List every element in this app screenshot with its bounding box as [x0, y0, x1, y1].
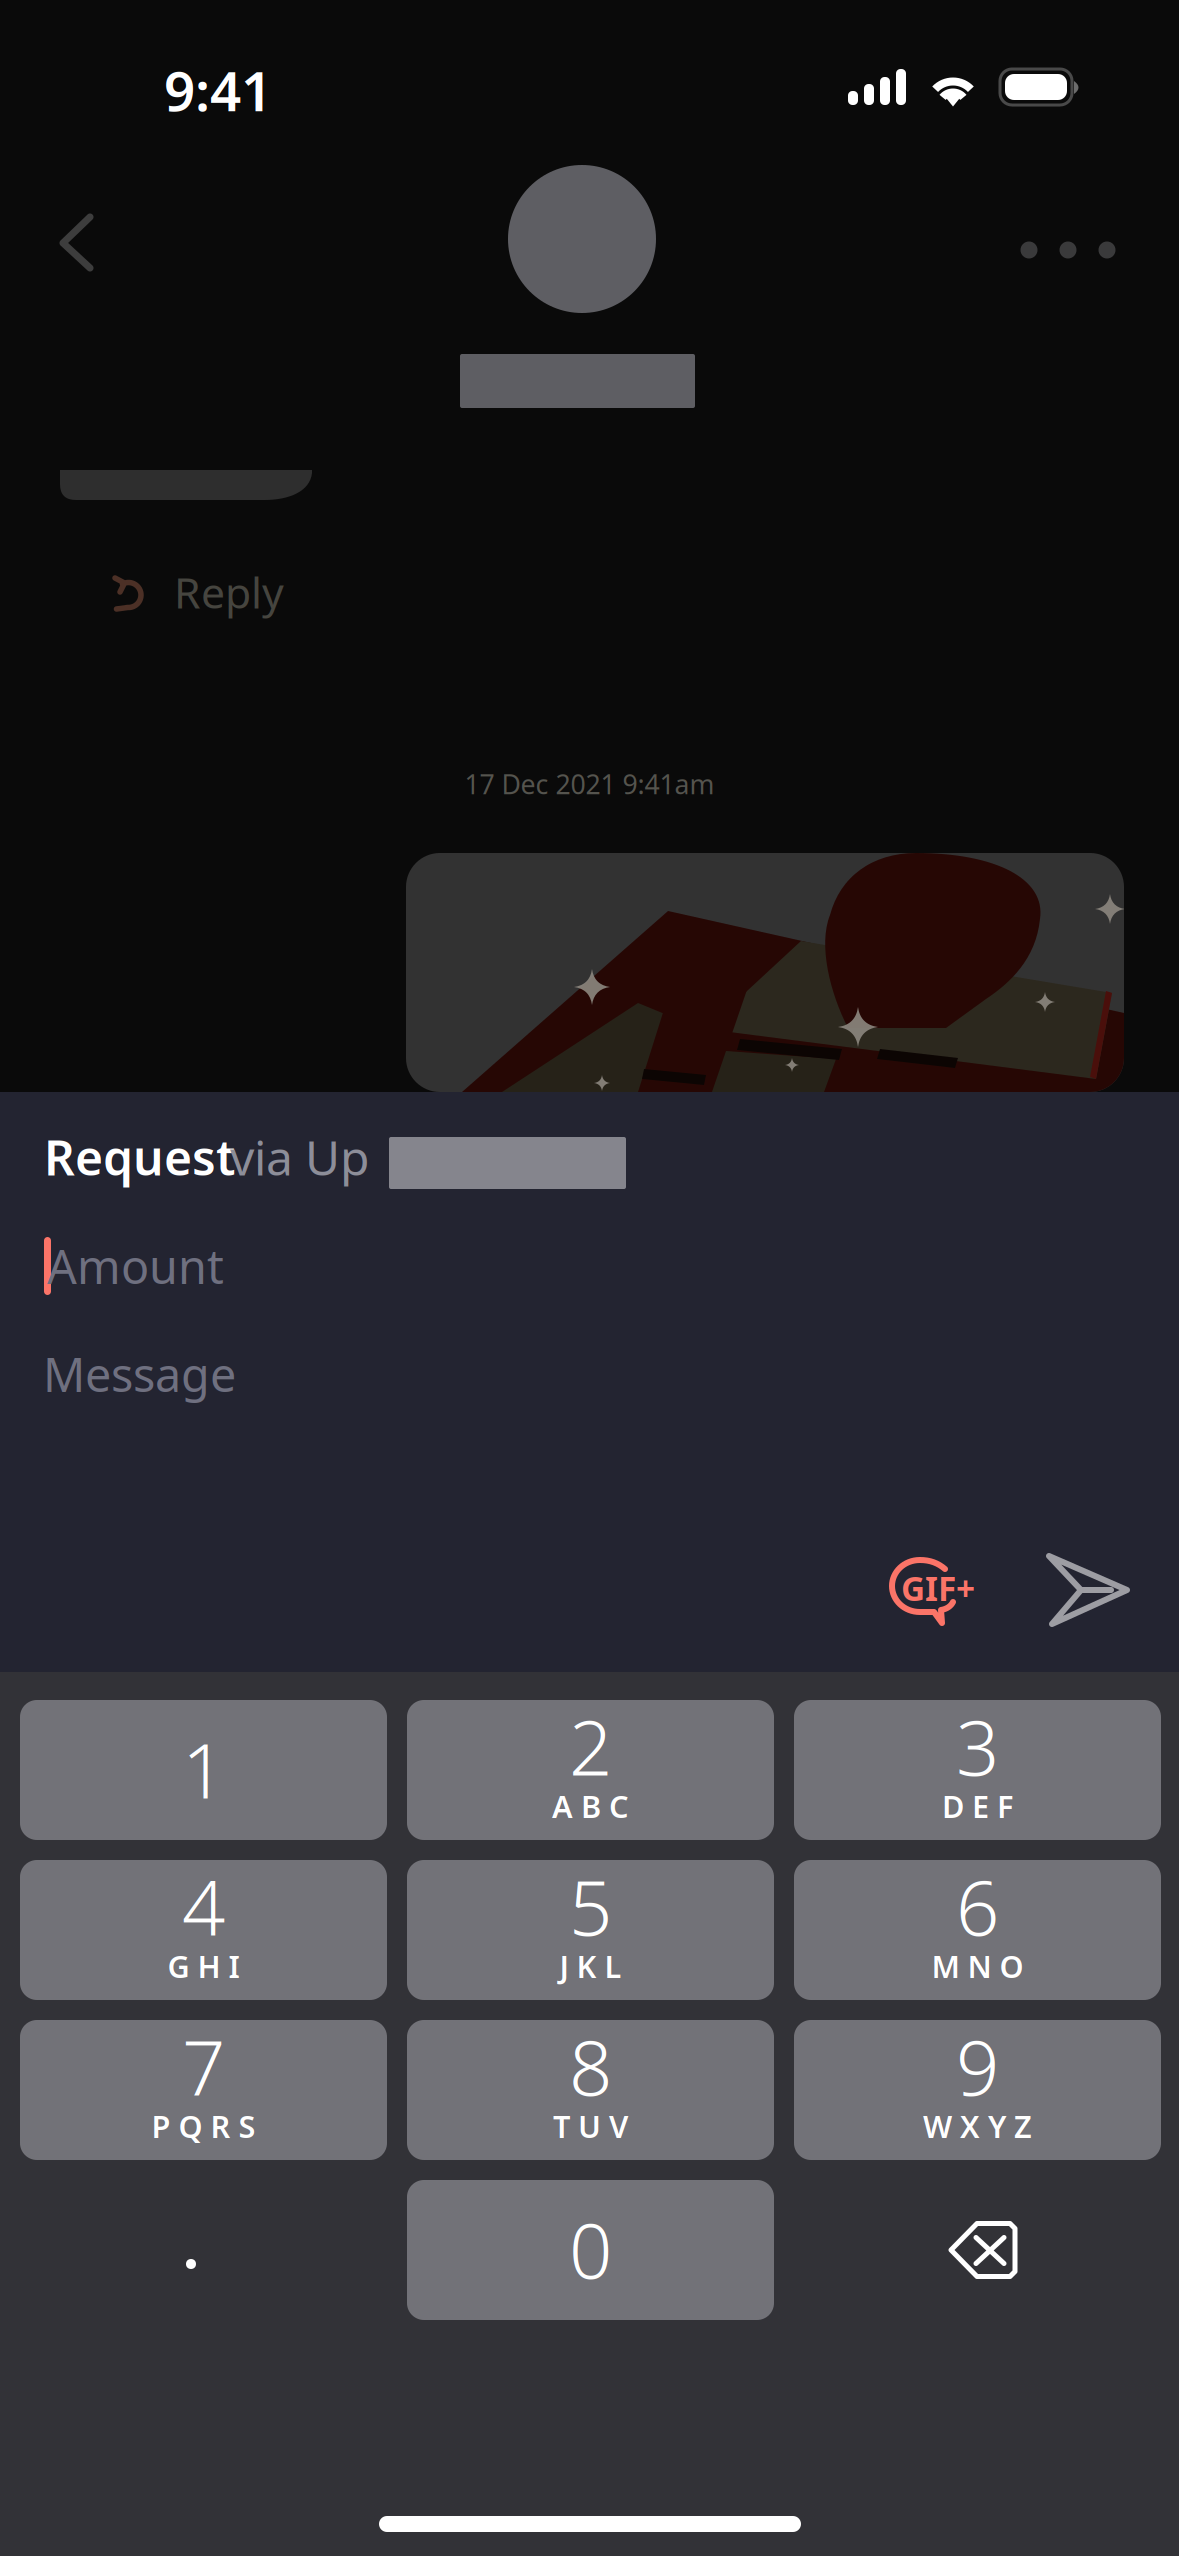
staticText: A B C	[552, 1786, 629, 1826]
staticText: Reply	[174, 564, 284, 620]
staticText: W X Y Z	[923, 2106, 1032, 2146]
staticText: 9	[956, 2015, 999, 2116]
button[interactable]: 8	[407, 2020, 774, 2160]
button[interactable]: More options	[0, 0, 1179, 2556]
button[interactable]: 0	[407, 2180, 774, 2320]
button[interactable]: 4	[20, 1860, 387, 2000]
staticText: 1	[182, 1718, 225, 1819]
staticText: 6	[956, 1855, 999, 1956]
button[interactable]: 3	[794, 1700, 1161, 1840]
staticText: Amount	[47, 1235, 224, 1297]
staticText: GIF+	[901, 1566, 975, 1610]
staticText: J K L	[559, 1946, 621, 1986]
staticText: via Up	[230, 1125, 370, 1189]
staticText: 8	[569, 2015, 612, 2116]
staticText: 4	[182, 1855, 225, 1956]
button[interactable]: Back	[0, 0, 1179, 2556]
button[interactable]: 6	[794, 1860, 1161, 2000]
button[interactable]: Delete	[794, 2180, 1161, 2320]
button[interactable]: 2	[407, 1700, 774, 1840]
staticText: G H I	[167, 1946, 239, 1986]
button[interactable]: 7	[20, 2020, 387, 2160]
staticText: T U V	[553, 2106, 628, 2146]
staticText: 0	[569, 2198, 612, 2299]
staticText: 9:41	[164, 54, 272, 126]
button[interactable]: Add GIF	[0, 0, 1179, 2556]
staticText: 7	[182, 2015, 225, 2116]
staticText: M N O	[931, 1946, 1023, 1986]
button[interactable]: 1	[20, 1700, 387, 1840]
staticText: 3	[956, 1695, 999, 1796]
button[interactable]: Reply	[0, 0, 1179, 2556]
staticText: 2	[569, 1695, 612, 1796]
staticText: 17 Dec 2021 9:41am	[464, 766, 714, 802]
staticText: Message	[43, 1343, 236, 1405]
button[interactable]: Send	[0, 0, 1179, 2556]
staticText: P Q R S	[151, 2106, 255, 2146]
button[interactable]: 5	[407, 1860, 774, 2000]
button[interactable]: 9	[794, 2020, 1161, 2160]
staticText: 5	[569, 1855, 612, 1956]
button[interactable]: Decimal point	[20, 2180, 387, 2320]
staticText: Request	[44, 1125, 235, 1189]
staticText: D E F	[942, 1786, 1013, 1826]
